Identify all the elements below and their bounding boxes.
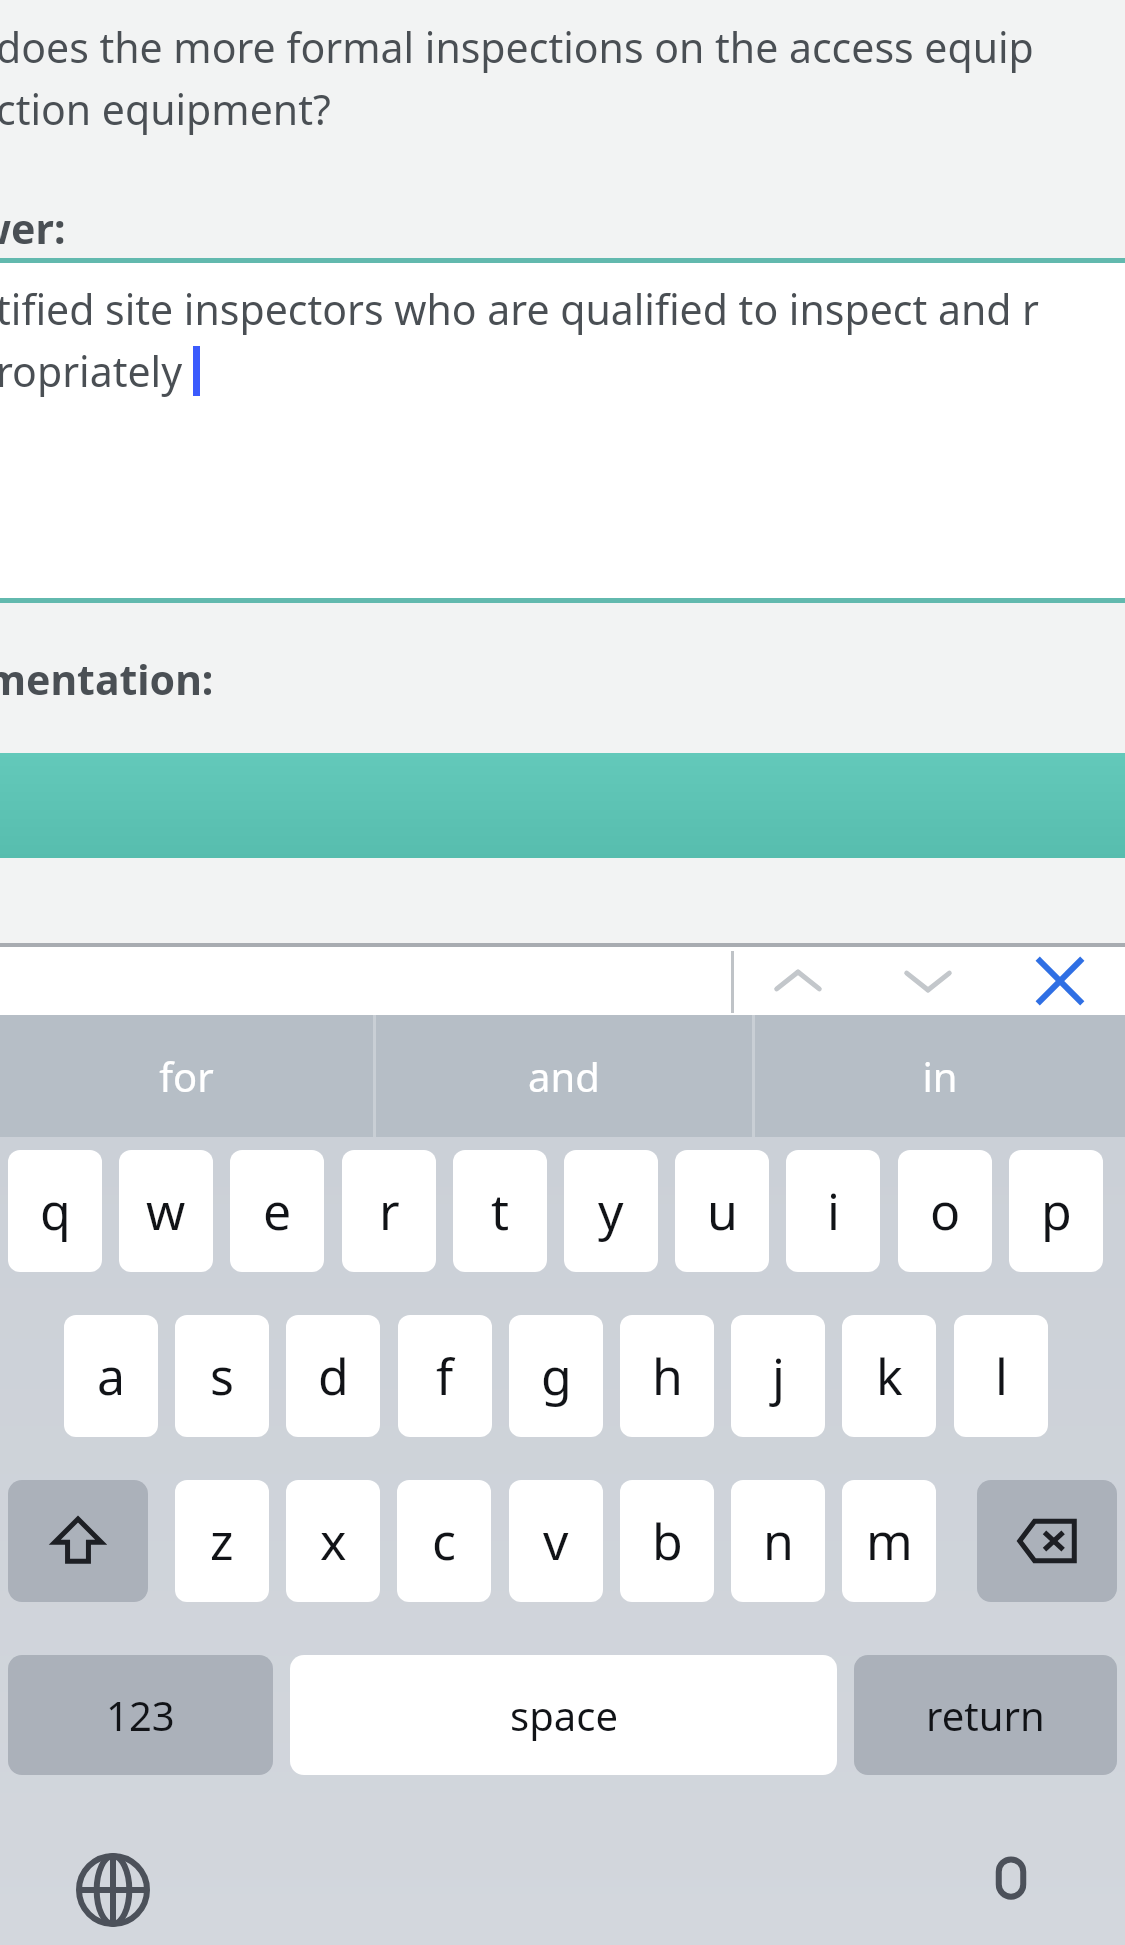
button[interactable]: k bbox=[842, 1315, 936, 1437]
button[interactable]: d bbox=[286, 1315, 380, 1437]
button[interactable]: g bbox=[509, 1315, 603, 1437]
staticText: d bbox=[318, 1342, 349, 1410]
staticText: n bbox=[763, 1507, 794, 1575]
button[interactable]: x bbox=[286, 1480, 380, 1602]
staticText: does the more formal inspections on the … bbox=[0, 19, 1034, 75]
button[interactable]: i bbox=[786, 1150, 880, 1272]
staticText: ropriately bbox=[0, 343, 193, 399]
staticText: c bbox=[432, 1507, 456, 1575]
button[interactable]: space bbox=[290, 1655, 837, 1775]
button[interactable]: v bbox=[509, 1480, 603, 1602]
button[interactable]: t bbox=[453, 1150, 547, 1272]
button[interactable]: Next field bbox=[872, 947, 984, 1015]
staticText: ction equipment? bbox=[0, 81, 331, 137]
staticText: s bbox=[210, 1342, 234, 1410]
button[interactable]: h bbox=[620, 1315, 714, 1437]
button[interactable]: r bbox=[342, 1150, 436, 1272]
staticText: h bbox=[652, 1342, 683, 1410]
button[interactable]: z bbox=[175, 1480, 269, 1602]
button[interactable]: 123 bbox=[8, 1655, 273, 1775]
button[interactable]: Voice input bbox=[958, 1837, 1063, 1942]
staticText: mentation: bbox=[0, 651, 214, 707]
button[interactable]: l bbox=[954, 1315, 1048, 1437]
staticText: g bbox=[541, 1342, 572, 1410]
button[interactable]: in bbox=[755, 1015, 1125, 1137]
button[interactable]: Close keyboard bbox=[1004, 947, 1116, 1015]
staticText: return bbox=[926, 1688, 1045, 1742]
staticText: q bbox=[40, 1177, 71, 1245]
staticText: 123 bbox=[106, 1688, 175, 1742]
button[interactable]: return bbox=[854, 1655, 1117, 1775]
button[interactable]: Add documentation bbox=[0, 753, 1125, 858]
staticText: r bbox=[379, 1177, 400, 1245]
button[interactable]: b bbox=[620, 1480, 714, 1602]
button[interactable]: o bbox=[898, 1150, 992, 1272]
staticText: t bbox=[491, 1177, 510, 1245]
staticText: v bbox=[543, 1507, 569, 1575]
staticText: l bbox=[995, 1342, 1008, 1410]
button[interactable]: Shift bbox=[8, 1480, 148, 1602]
staticText: y bbox=[598, 1177, 624, 1245]
button[interactable]: p bbox=[1009, 1150, 1103, 1272]
staticText: f bbox=[436, 1342, 454, 1410]
staticText: i bbox=[827, 1177, 840, 1245]
button[interactable]: s bbox=[175, 1315, 269, 1437]
staticText: x bbox=[320, 1507, 347, 1575]
staticText: j bbox=[772, 1342, 785, 1410]
staticText: o bbox=[930, 1177, 961, 1245]
staticText: p bbox=[1041, 1177, 1072, 1245]
staticText: wer: bbox=[0, 200, 66, 256]
staticText: a bbox=[97, 1342, 126, 1410]
staticText: tified site inspectors who are qualified… bbox=[0, 281, 1040, 337]
button[interactable]: Backspace bbox=[977, 1480, 1117, 1602]
button[interactable]: for bbox=[0, 1015, 373, 1137]
staticText: k bbox=[876, 1342, 903, 1410]
button[interactable]: f bbox=[398, 1315, 492, 1437]
button[interactable]: w bbox=[119, 1150, 213, 1272]
staticText: m bbox=[866, 1507, 913, 1575]
staticText: b bbox=[652, 1507, 683, 1575]
button[interactable]: u bbox=[675, 1150, 769, 1272]
staticText: w bbox=[146, 1177, 186, 1245]
staticText: space bbox=[510, 1688, 618, 1742]
button[interactable]: a bbox=[64, 1315, 158, 1437]
button[interactable]: Previous field bbox=[742, 947, 854, 1015]
button[interactable]: Change keyboard bbox=[60, 1837, 165, 1942]
staticText: e bbox=[263, 1177, 292, 1245]
button[interactable]: tified site inspectors who are qualified… bbox=[0, 263, 1125, 598]
button[interactable]: e bbox=[230, 1150, 324, 1272]
button[interactable]: j bbox=[731, 1315, 825, 1437]
staticText: z bbox=[210, 1507, 234, 1575]
button[interactable]: y bbox=[564, 1150, 658, 1272]
button[interactable]: m bbox=[842, 1480, 936, 1602]
button[interactable]: q bbox=[8, 1150, 102, 1272]
button[interactable]: n bbox=[731, 1480, 825, 1602]
staticText: u bbox=[707, 1177, 738, 1245]
button[interactable]: c bbox=[397, 1480, 491, 1602]
staticText: in bbox=[922, 1049, 958, 1103]
button[interactable]: and bbox=[376, 1015, 752, 1137]
staticText: and bbox=[528, 1049, 600, 1103]
staticText: for bbox=[159, 1049, 214, 1103]
